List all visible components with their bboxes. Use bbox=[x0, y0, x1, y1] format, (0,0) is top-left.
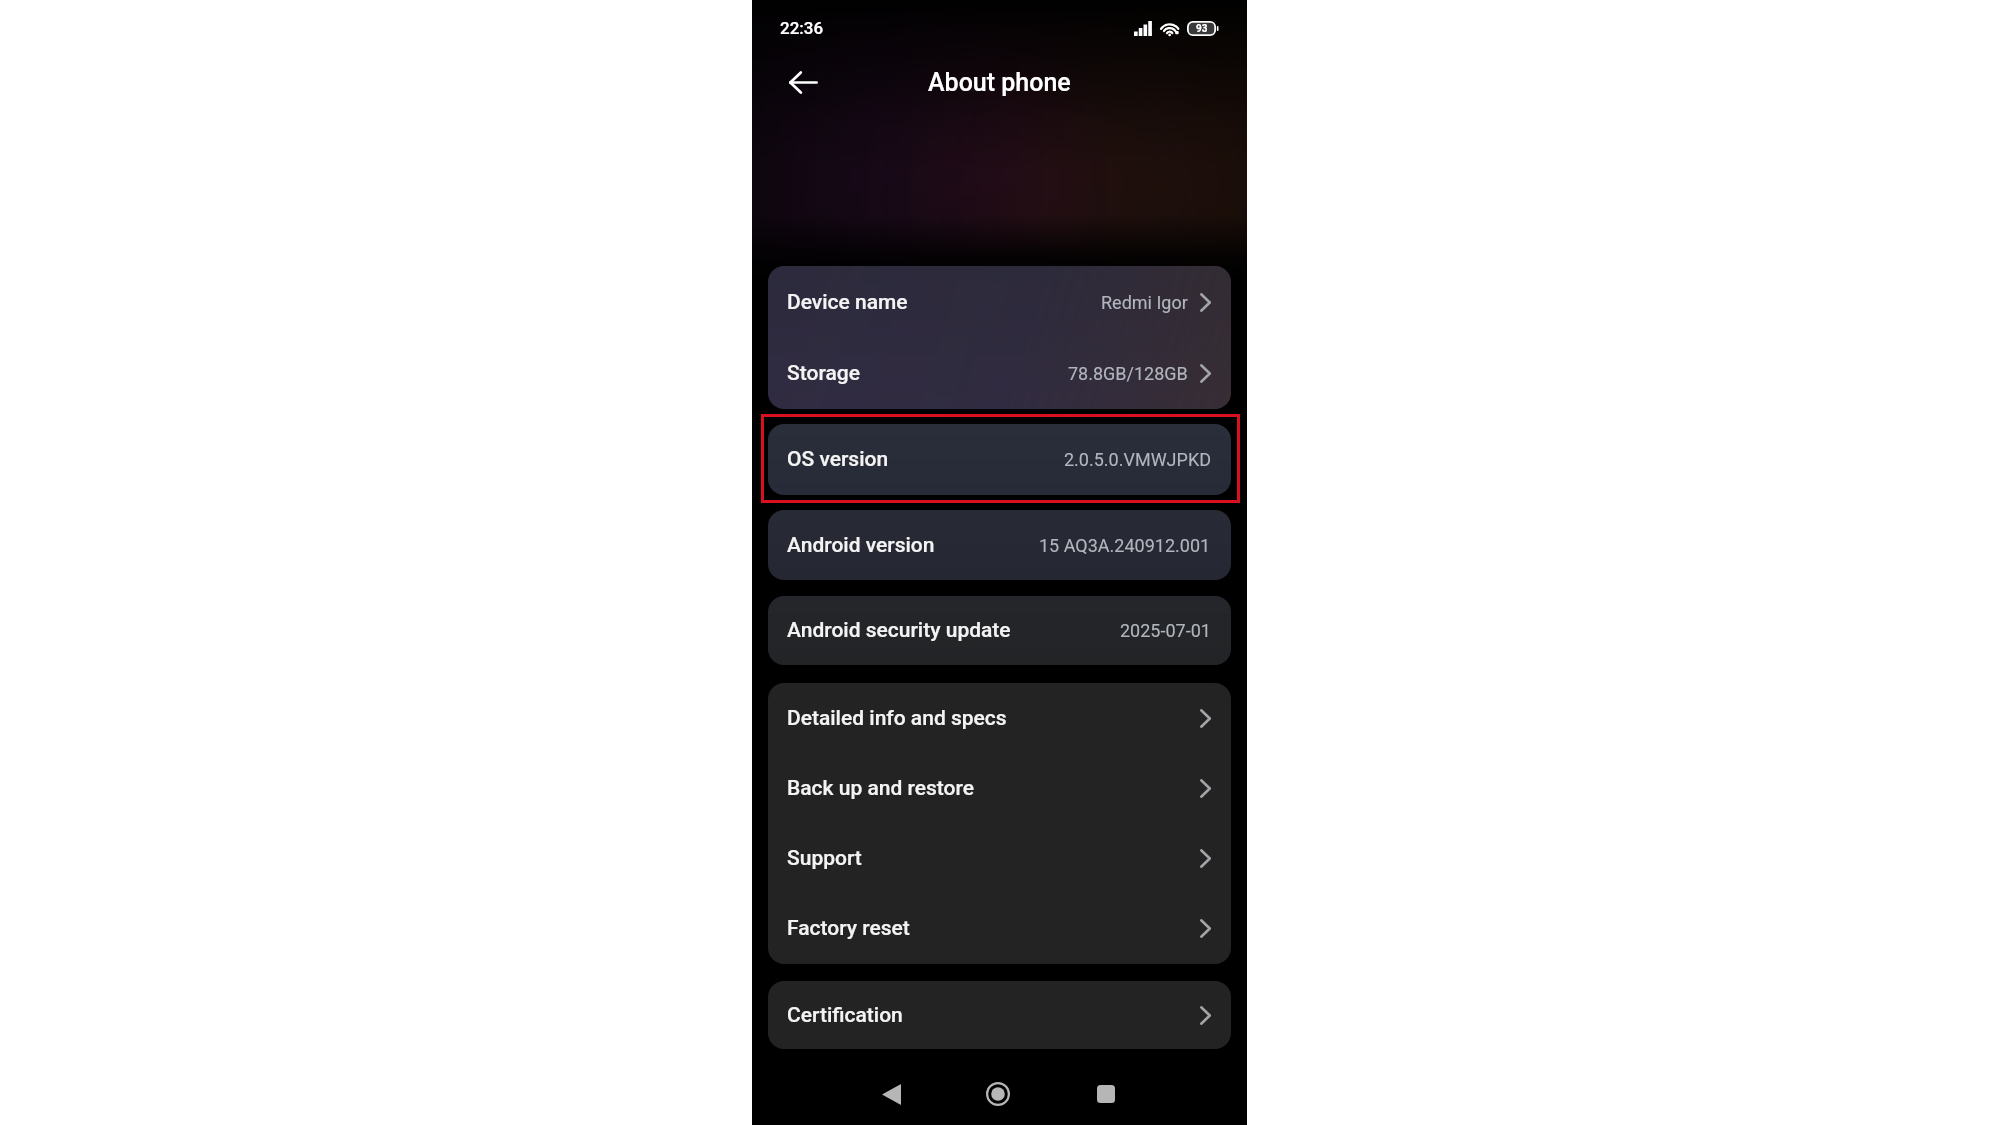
staticText: Android version bbox=[787, 533, 935, 558]
staticText: Back up and restore bbox=[787, 776, 974, 801]
button[interactable]: Factory reset bbox=[768, 893, 1231, 964]
button[interactable]: OS version bbox=[768, 424, 1231, 495]
staticText: Redmi Igor bbox=[1101, 292, 1188, 313]
staticText: 22:36 bbox=[780, 18, 824, 38]
button[interactable]: Home bbox=[972, 1063, 1024, 1125]
button[interactable]: Android version bbox=[768, 510, 1231, 580]
staticText: About phone bbox=[928, 68, 1071, 97]
staticText: OS version bbox=[787, 447, 889, 472]
staticText: Certification bbox=[787, 1003, 903, 1028]
button[interactable]: Navigate back bbox=[865, 1063, 917, 1125]
staticText: Support bbox=[787, 846, 862, 871]
staticText: 2.0.5.0.VMWJPKD bbox=[1064, 449, 1211, 470]
button[interactable]: Recent apps bbox=[1080, 1063, 1132, 1125]
button[interactable]: Certification bbox=[768, 981, 1231, 1049]
staticText: 15 AQ3A.240912.001 bbox=[1039, 535, 1211, 556]
staticText: 78.8GB/128GB bbox=[1068, 363, 1188, 384]
staticText: Detailed info and specs bbox=[787, 706, 1007, 731]
button[interactable]: Back bbox=[779, 58, 827, 106]
staticText: 93 bbox=[1196, 23, 1208, 35]
staticText: 2025-07-01 bbox=[1120, 620, 1211, 641]
staticText: Device name bbox=[787, 290, 908, 315]
staticText: Storage bbox=[787, 361, 860, 386]
button[interactable]: Support bbox=[768, 823, 1231, 893]
button[interactable]: Android security update bbox=[768, 596, 1231, 665]
button[interactable]: Back up and restore bbox=[768, 753, 1231, 823]
staticText: Android security update bbox=[787, 618, 1011, 643]
button[interactable]: Device name bbox=[768, 266, 1231, 338]
staticText: Factory reset bbox=[787, 916, 910, 941]
button[interactable]: Storage bbox=[768, 338, 1231, 409]
button[interactable]: Detailed info and specs bbox=[768, 683, 1231, 753]
